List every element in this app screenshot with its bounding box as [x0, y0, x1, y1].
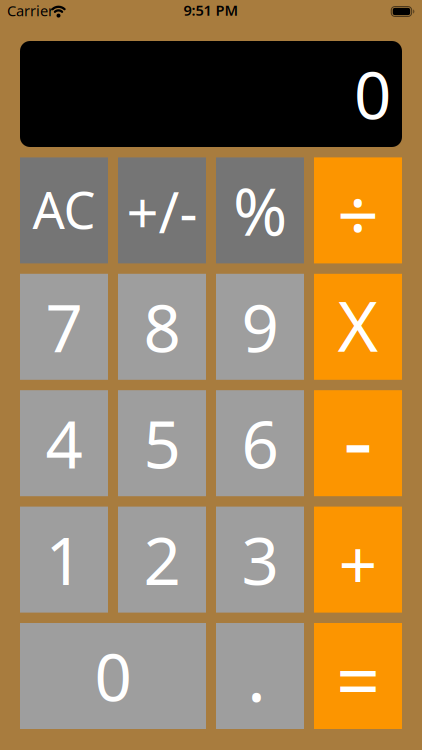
staticText: 2 [143, 516, 180, 603]
staticText: 4 [45, 400, 82, 487]
button[interactable]: 6 [216, 390, 304, 496]
staticText: AC [32, 176, 95, 243]
staticText: 8 [143, 283, 180, 370]
staticText: 9:51 PM [183, 0, 238, 20]
staticText: ÷ [337, 165, 379, 262]
button[interactable]: +/- [118, 157, 206, 263]
button[interactable]: = [314, 623, 402, 729]
staticText: + [338, 518, 377, 609]
button[interactable]: AC [20, 157, 108, 263]
button[interactable]: 8 [118, 274, 206, 380]
staticText: = [336, 628, 380, 730]
staticText: 0 [94, 633, 131, 719]
staticText: 5 [143, 400, 180, 487]
staticText: +/- [126, 174, 197, 249]
button[interactable]: 9 [216, 274, 304, 380]
staticText: % [233, 167, 287, 254]
button[interactable]: - [314, 390, 402, 496]
button[interactable]: 1 [20, 507, 108, 613]
staticText: - [343, 375, 373, 499]
staticText: 1 [45, 516, 82, 603]
button[interactable]: % [216, 157, 304, 263]
staticText: 0 [354, 51, 391, 137]
button[interactable]: X [314, 274, 402, 380]
button[interactable]: ÷ [314, 157, 402, 263]
staticText: X [337, 279, 378, 371]
staticText: 9 [241, 283, 278, 370]
staticText: 7 [45, 283, 82, 370]
button[interactable]: + [314, 507, 402, 613]
button[interactable]: 2 [118, 507, 206, 613]
staticText: Carrier [7, 1, 54, 20]
button[interactable]: 7 [20, 274, 108, 380]
staticText: 6 [241, 400, 278, 487]
staticText: . [247, 628, 266, 721]
button[interactable]: . [216, 623, 304, 729]
button[interactable]: 0 [20, 623, 206, 729]
button[interactable]: 3 [216, 507, 304, 613]
button[interactable]: 5 [118, 390, 206, 496]
button[interactable]: 4 [20, 390, 108, 496]
staticText: 3 [241, 516, 278, 603]
